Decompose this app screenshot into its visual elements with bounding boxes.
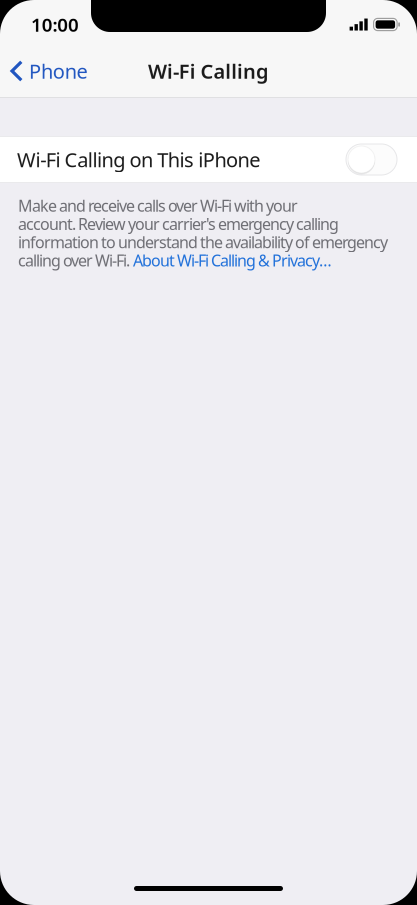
button[interactable]: Phone <box>0 50 96 92</box>
staticText: Wi-Fi Calling <box>148 58 269 84</box>
staticText: account. Review your carrier's emergency… <box>18 213 339 234</box>
button[interactable]: Wi-Fi Calling on This iPhone <box>0 136 417 183</box>
staticText: 10:00 <box>31 12 79 37</box>
staticText: About Wi-Fi Calling & Privacy… <box>133 250 332 271</box>
staticText: Phone <box>29 58 88 84</box>
staticText: calling over Wi-Fi. <box>18 250 133 271</box>
button[interactable]: About Wi-Fi Calling & Privacy… <box>133 250 332 271</box>
staticText: Wi-Fi Calling on This iPhone <box>17 146 260 173</box>
staticText: information to understand the availabili… <box>18 231 388 253</box>
staticText: Make and receive calls over Wi-Fi with y… <box>18 195 298 216</box>
